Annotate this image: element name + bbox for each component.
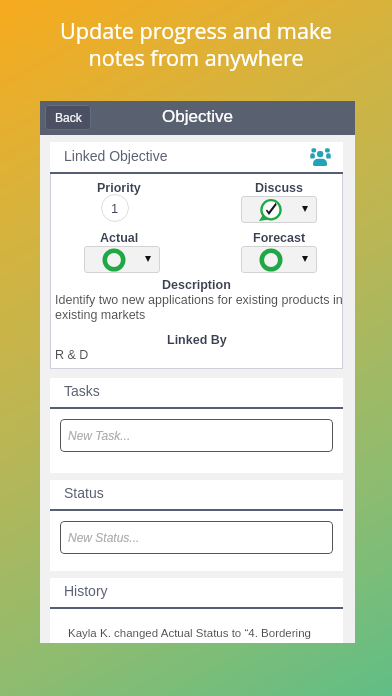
staticText: Status bbox=[64, 485, 104, 501]
staticText: 1 bbox=[111, 201, 119, 216]
staticText: Description bbox=[162, 278, 231, 292]
staticText: Update progress and make notes from anyw… bbox=[60, 16, 332, 72]
staticText: Discuss bbox=[255, 181, 303, 195]
button[interactable]: Back bbox=[45, 105, 91, 130]
staticText: R & D bbox=[55, 348, 89, 362]
staticText: Actual bbox=[100, 231, 139, 245]
button[interactable]: Forecast status bbox=[241, 246, 317, 273]
staticText: Linked By bbox=[167, 333, 227, 347]
staticText: Objective bbox=[162, 107, 233, 126]
staticText: Back bbox=[55, 111, 82, 124]
staticText: New Status... bbox=[68, 531, 140, 544]
button[interactable]: Actual status bbox=[84, 246, 160, 273]
button[interactable]: 1 bbox=[101, 194, 129, 222]
staticText: Forecast bbox=[253, 231, 306, 245]
button[interactable]: New Task... bbox=[60, 419, 333, 452]
staticText: Tasks bbox=[64, 383, 100, 399]
staticText: Kayla K. changed Actual Status to “4. Bo… bbox=[68, 627, 311, 640]
button[interactable]: New Status... bbox=[60, 521, 333, 554]
button[interactable]: Discuss status bbox=[241, 196, 317, 223]
button[interactable]: Linked people bbox=[310, 148, 331, 166]
staticText: Identify two new applications for existi… bbox=[55, 293, 343, 322]
staticText: New Task... bbox=[68, 429, 131, 442]
staticText: Priority bbox=[97, 181, 141, 195]
staticText: Linked Objective bbox=[64, 148, 168, 164]
staticText: History bbox=[64, 583, 108, 599]
